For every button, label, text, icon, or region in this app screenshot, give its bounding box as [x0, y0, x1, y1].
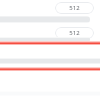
button[interactable]: 512	[55, 2, 94, 14]
staticText: 512	[69, 29, 80, 37]
staticText: 512	[69, 4, 80, 12]
button[interactable]: 512	[55, 27, 94, 39]
